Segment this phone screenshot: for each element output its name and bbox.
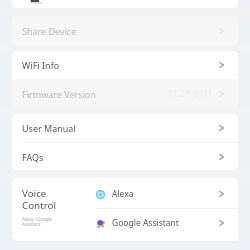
staticText: Share Device	[22, 25, 77, 37]
button[interactable]: Google Assistant	[96, 209, 238, 237]
staticText: Alexa / Google Assistant	[22, 216, 52, 227]
staticText: User Manual	[22, 122, 76, 134]
button[interactable]: Firmware Version	[12, 79, 238, 108]
button[interactable]: WiFi Info	[12, 51, 238, 79]
button[interactable]: User Manual	[12, 114, 238, 142]
button[interactable]: Voice Control	[12, 178, 238, 241]
staticText: Google Assistant	[112, 217, 179, 229]
button[interactable]: Share Device	[12, 16, 238, 45]
staticText: FAQs	[22, 151, 44, 163]
button[interactable]: FAQs	[12, 143, 238, 170]
staticText: WiFi Info	[22, 59, 60, 71]
staticText: Firmware Version	[22, 88, 96, 100]
staticText: Alexa	[112, 188, 134, 200]
staticText: Voice Control	[22, 187, 57, 212]
button[interactable]: Alexa	[96, 180, 238, 208]
